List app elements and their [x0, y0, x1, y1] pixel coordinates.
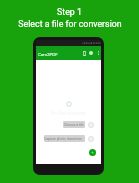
staticText: Capture photo, transform to pdf — [44, 137, 85, 141]
button[interactable]: More options — [94, 49, 102, 57]
staticText: Step 1 — [57, 7, 82, 17]
button[interactable]: Add — [89, 149, 96, 156]
button[interactable]: Capture photo, transform to pdf — [88, 136, 94, 142]
button[interactable]: Choose a file — [63, 121, 85, 128]
staticText: Select a file for conversion — [18, 19, 122, 29]
staticText: No file selected — [51, 110, 86, 116]
staticText: Choose a file — [64, 123, 84, 127]
staticText: Cam2PDF — [38, 52, 58, 57]
button[interactable]: Device — [80, 49, 88, 57]
button[interactable]: Capture photo, transform to pdf — [44, 135, 85, 142]
button[interactable]: Choose a file — [88, 122, 94, 128]
button[interactable]: Share — [87, 49, 95, 57]
